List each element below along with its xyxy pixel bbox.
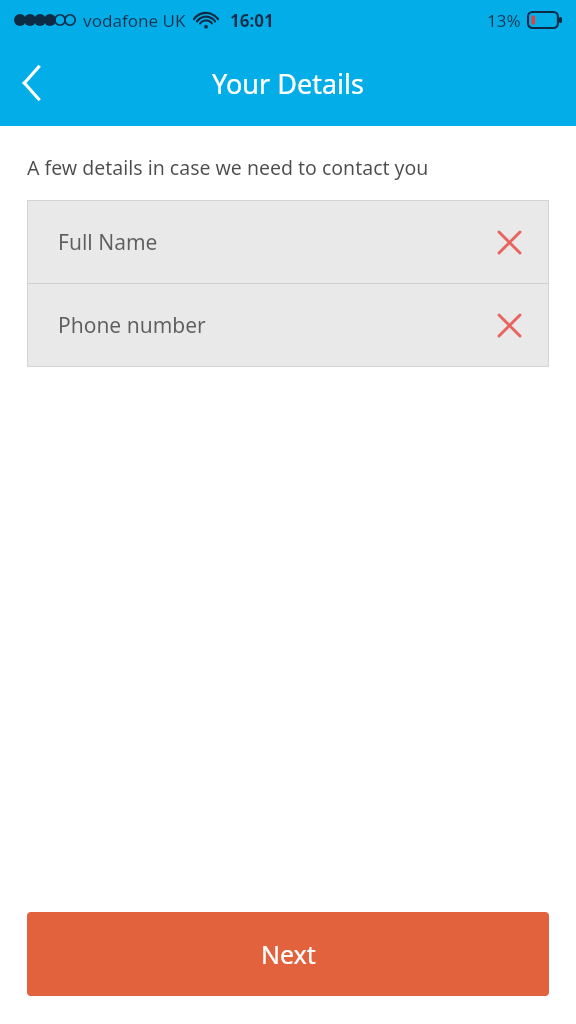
button[interactable]: Clear Phone number: [487, 303, 531, 347]
staticText: A few details in case we need to contact…: [27, 154, 429, 181]
staticText: 16:01: [230, 9, 274, 32]
button[interactable]: Clear Full Name: [487, 220, 531, 264]
button[interactable]: Phone number: [28, 284, 548, 366]
button[interactable]: Full Name: [28, 201, 548, 283]
staticText: Full Name: [58, 228, 158, 257]
button[interactable]: Next: [27, 912, 549, 996]
staticText: 13%: [487, 9, 521, 32]
staticText: vodafone UK: [83, 9, 186, 32]
button[interactable]: Back: [0, 40, 62, 126]
staticText: Your Details: [212, 65, 364, 102]
staticText: Phone number: [58, 311, 206, 340]
staticText: Next: [261, 937, 316, 971]
